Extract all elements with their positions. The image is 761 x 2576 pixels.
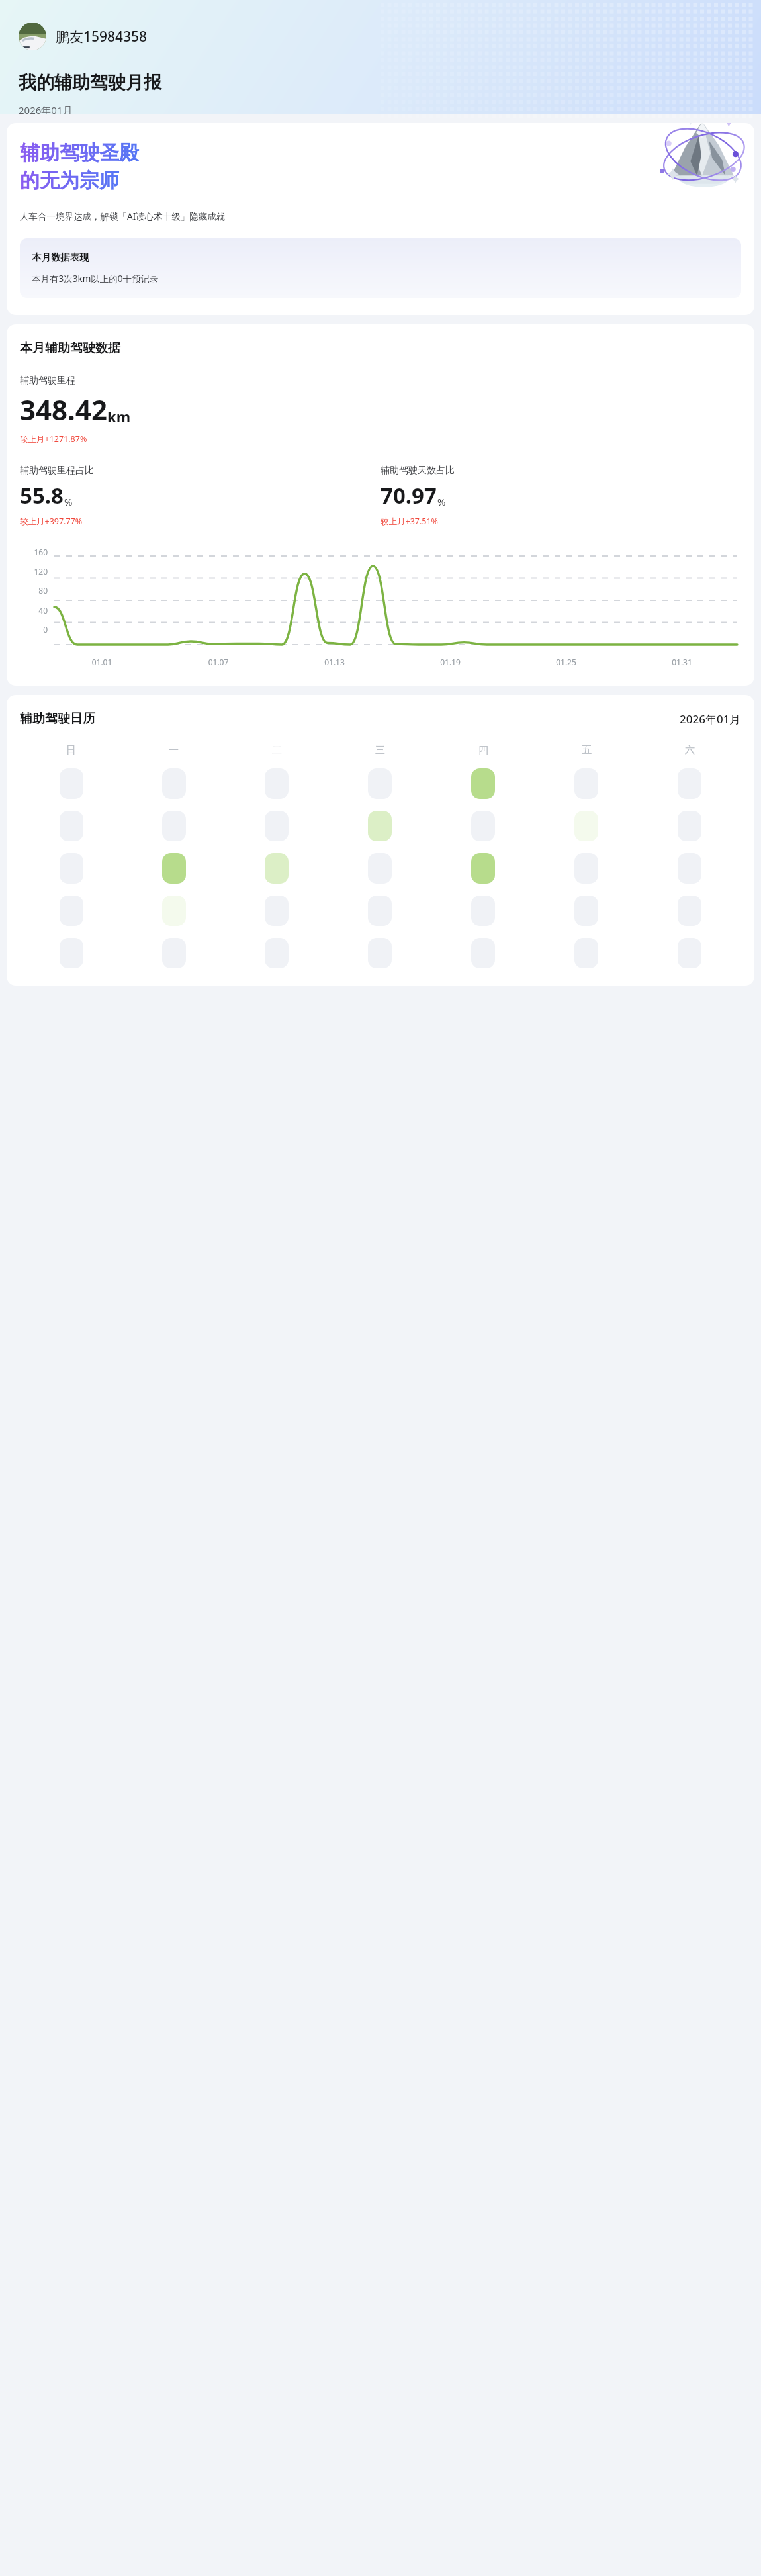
- button[interactable]: [60, 768, 83, 799]
- staticText: 80: [20, 585, 48, 596]
- button[interactable]: [574, 768, 598, 799]
- staticText: %: [64, 495, 73, 508]
- button[interactable]: [368, 768, 392, 799]
- staticText: 70.97: [380, 481, 437, 510]
- staticText: 160: [20, 547, 48, 557]
- staticText: 辅助驾驶日历: [20, 711, 95, 727]
- button[interactable]: [678, 853, 701, 884]
- staticText: 本月辅助驾驶数据: [20, 340, 120, 356]
- staticText: 120: [20, 566, 48, 576]
- staticText: 40: [20, 605, 48, 616]
- staticText: 一: [169, 744, 179, 757]
- button[interactable]: User avatar: [19, 23, 46, 50]
- staticText: 五: [582, 744, 592, 757]
- button[interactable]: [162, 938, 186, 968]
- staticText: km: [107, 406, 131, 426]
- button[interactable]: [368, 896, 392, 926]
- staticText: 人车合一境界达成，解锁「AI读心术十级」隐藏成就: [20, 210, 226, 222]
- button[interactable]: [265, 896, 289, 926]
- button[interactable]: [60, 896, 83, 926]
- button[interactable]: 本月辅助驾驶数据: [7, 324, 754, 686]
- button[interactable]: 辅助驾驶圣殿: [7, 123, 754, 315]
- staticText: 01.19: [392, 657, 508, 667]
- button[interactable]: [60, 853, 83, 884]
- staticText: 01.13: [277, 657, 392, 667]
- button[interactable]: [678, 896, 701, 926]
- button[interactable]: [471, 938, 495, 968]
- button[interactable]: [574, 811, 598, 841]
- button[interactable]: [471, 896, 495, 926]
- button[interactable]: [265, 938, 289, 968]
- staticText: 二: [272, 744, 282, 757]
- staticText: 01.25: [508, 657, 624, 667]
- button[interactable]: [678, 938, 701, 968]
- staticText: 01.07: [160, 657, 277, 667]
- button[interactable]: [678, 768, 701, 799]
- staticText: 六: [685, 744, 695, 757]
- staticText: 的无为宗师: [20, 168, 119, 193]
- button[interactable]: [265, 811, 289, 841]
- button[interactable]: [265, 853, 289, 884]
- staticText: 辅助驾驶里程: [20, 375, 75, 387]
- staticText: 0: [20, 624, 48, 635]
- staticText: %: [437, 495, 446, 508]
- button[interactable]: [471, 811, 495, 841]
- button[interactable]: 本月数据表现: [20, 238, 741, 298]
- button[interactable]: [162, 768, 186, 799]
- button[interactable]: 辅助驾驶天数占比: [380, 465, 741, 527]
- button[interactable]: 辅助驾驶里程占比: [20, 465, 380, 527]
- button[interactable]: [162, 811, 186, 841]
- button[interactable]: [574, 853, 598, 884]
- button[interactable]: [471, 853, 495, 884]
- staticText: 01.01: [44, 657, 160, 667]
- button[interactable]: [60, 938, 83, 968]
- button[interactable]: [368, 938, 392, 968]
- staticText: 本月数据表现: [32, 252, 89, 263]
- staticText: 四: [478, 744, 488, 757]
- button[interactable]: [471, 768, 495, 799]
- button[interactable]: 辅助驾驶日历: [7, 695, 754, 986]
- staticText: 较上月+1271.87%: [20, 434, 87, 445]
- button[interactable]: [162, 896, 186, 926]
- button[interactable]: [678, 811, 701, 841]
- staticText: 55.8: [20, 481, 64, 510]
- staticText: 三: [375, 744, 385, 757]
- staticText: 348.42: [20, 391, 107, 428]
- staticText: 鹏友15984358: [56, 27, 148, 46]
- staticText: 辅助驾驶里程占比: [20, 465, 94, 477]
- button[interactable]: [368, 853, 392, 884]
- staticText: 2026年01月: [680, 712, 741, 727]
- staticText: 辅助驾驶天数占比: [380, 465, 455, 477]
- staticText: 我的辅助驾驶月报: [19, 71, 161, 94]
- staticText: 日: [66, 744, 76, 757]
- button[interactable]: [162, 853, 186, 884]
- staticText: 2026年01月: [19, 103, 73, 114]
- button[interactable]: [368, 811, 392, 841]
- staticText: 本月有3次3km以上的0干预记录: [32, 273, 159, 285]
- button[interactable]: [265, 768, 289, 799]
- staticText: 01.31: [624, 657, 740, 667]
- staticText: 辅助驾驶圣殿: [20, 140, 139, 165]
- button[interactable]: [574, 938, 598, 968]
- staticText: 较上月+37.51%: [380, 516, 438, 527]
- button[interactable]: [60, 811, 83, 841]
- button[interactable]: [574, 896, 598, 926]
- staticText: 较上月+397.77%: [20, 516, 83, 527]
